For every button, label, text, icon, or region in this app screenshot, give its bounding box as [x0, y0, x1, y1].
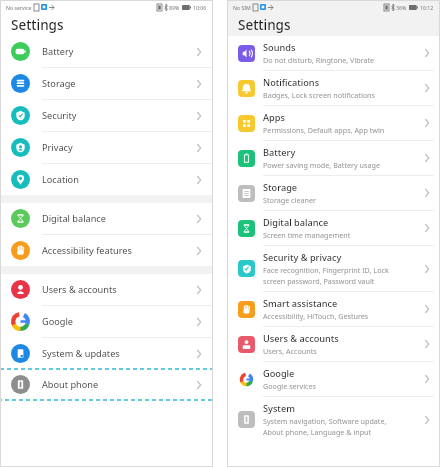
staticText: Badges, Lock screen notifications	[263, 90, 375, 100]
staticText: Permissions, Default apps, App twin	[263, 125, 385, 135]
staticText: Digital balance	[263, 216, 329, 229]
button[interactable]: About phone	[0, 369, 213, 400]
staticText: Battery	[263, 146, 296, 159]
staticText: Accessibility, HiTouch, Gestures	[263, 311, 369, 321]
staticText: Apps	[263, 111, 285, 124]
staticText: Users & accounts	[263, 332, 339, 345]
staticText: Storage cleaner	[263, 195, 316, 205]
staticText: Face recognition, Fingerprint ID, Lock	[263, 265, 389, 275]
button[interactable]: System & updates	[0, 338, 213, 369]
staticText: System navigation, Software update,	[263, 416, 387, 426]
staticText: Smart assistance	[263, 297, 338, 310]
button[interactable]: System	[227, 397, 440, 442]
button[interactable]: Users & accounts	[227, 327, 440, 361]
staticText: 36%	[396, 4, 407, 11]
staticText: screen password, Password vault	[263, 276, 375, 286]
staticText: Google	[263, 367, 295, 380]
staticText: 89%	[169, 4, 180, 11]
staticText: Sounds	[263, 41, 296, 54]
staticText: 10:12	[420, 4, 434, 11]
button[interactable]: Sounds	[227, 36, 440, 70]
button[interactable]: Digital balance	[0, 203, 213, 234]
button[interactable]: Accessibility features	[0, 235, 213, 266]
staticText: Location	[42, 173, 194, 186]
staticText: Google services	[263, 381, 317, 391]
staticText: No SIM	[233, 4, 251, 11]
button[interactable]: Security	[0, 100, 213, 131]
staticText: Users, Accounts	[263, 346, 317, 356]
staticText: Settings	[11, 16, 64, 34]
staticText: System & updates	[42, 347, 194, 360]
button[interactable]: Battery	[0, 36, 213, 67]
staticText: Screen time management	[263, 230, 351, 240]
staticText: Accessibility features	[42, 244, 194, 257]
button[interactable]: Security & privacy	[227, 246, 440, 291]
staticText: Storage	[263, 181, 298, 194]
button[interactable]: Google	[227, 362, 440, 396]
staticText: Users & accounts	[42, 283, 194, 296]
staticText: Power saving mode, Battery usage	[263, 160, 380, 170]
staticText: Security	[42, 109, 194, 122]
staticText: Battery	[42, 45, 194, 58]
staticText: Privacy	[42, 141, 194, 154]
staticText: Do not disturb, Ringtone, Vibrate	[263, 55, 375, 65]
button[interactable]: Storage	[0, 68, 213, 99]
button[interactable]: Users & accounts	[0, 274, 213, 305]
button[interactable]: Digital balance	[227, 211, 440, 245]
button[interactable]: Smart assistance	[227, 292, 440, 326]
staticText: Storage	[42, 77, 194, 90]
staticText: Google	[42, 315, 194, 328]
staticText: Digital balance	[42, 212, 194, 225]
button[interactable]: Apps	[227, 106, 440, 140]
staticText: Security & privacy	[263, 251, 342, 264]
staticText: No service	[6, 4, 32, 11]
button[interactable]: Privacy	[0, 132, 213, 163]
button[interactable]: Storage	[227, 176, 440, 210]
button[interactable]: Location	[0, 164, 213, 195]
staticText: System	[263, 402, 295, 415]
staticText: About phone, Language & input	[263, 427, 372, 437]
button[interactable]: Notifications	[227, 71, 440, 105]
staticText: Notifications	[263, 76, 320, 89]
button[interactable]: Battery	[227, 141, 440, 175]
staticText: Settings	[238, 16, 291, 34]
staticText: About phone	[42, 378, 194, 391]
button[interactable]: Google	[0, 306, 213, 337]
staticText: 10:06	[193, 4, 207, 11]
